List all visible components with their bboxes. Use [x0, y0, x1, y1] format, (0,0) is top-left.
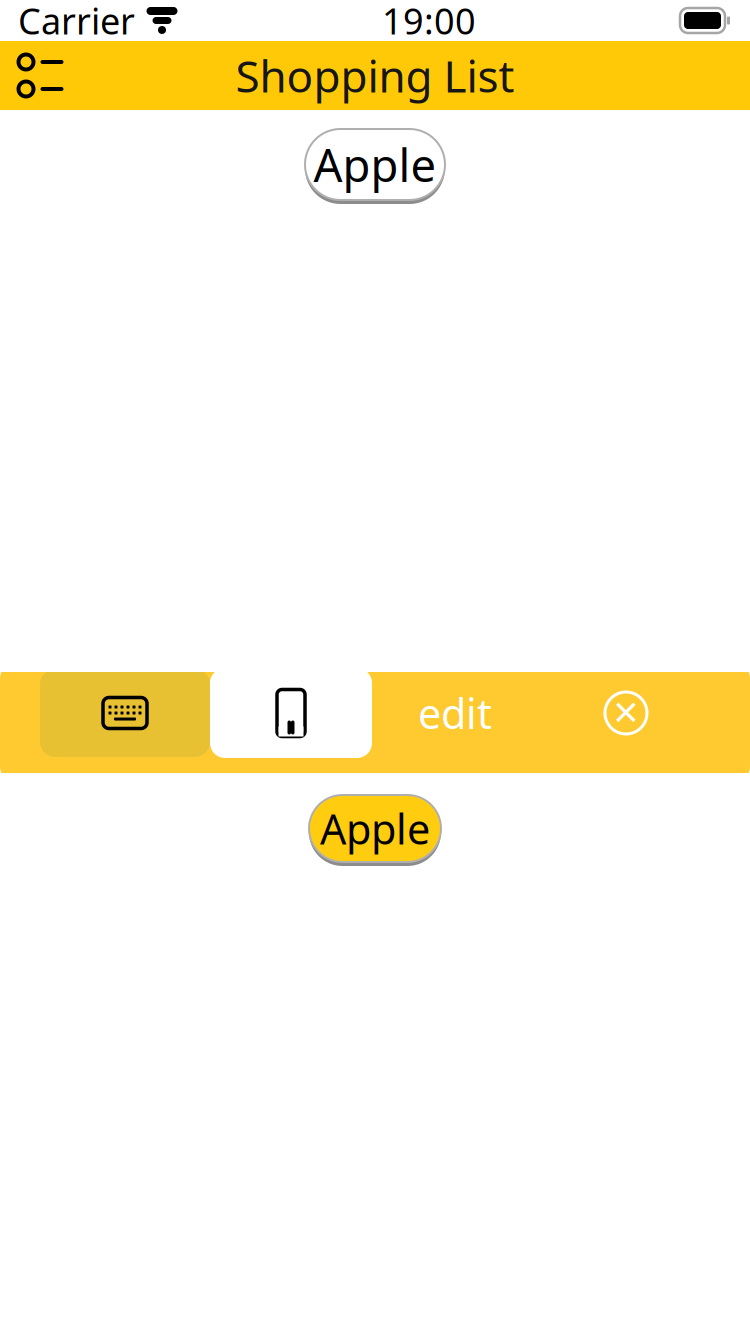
staticText: Carrier — [18, 0, 135, 44]
button[interactable]: Menu — [9, 43, 73, 107]
staticText: Apple — [313, 134, 436, 195]
staticText: 19:00 — [382, 0, 476, 44]
button[interactable]: edit — [390, 678, 520, 748]
button[interactable]: Bookmark — [210, 668, 372, 758]
staticText: ✕ — [612, 694, 640, 732]
staticText: edit — [418, 686, 492, 740]
button[interactable]: Apple — [301, 124, 449, 205]
staticText: Apple — [320, 801, 430, 856]
button[interactable]: Apple — [305, 790, 445, 867]
button[interactable]: Close — [594, 681, 658, 745]
staticText: Shopping List — [235, 46, 514, 105]
button[interactable]: Keyboard — [40, 669, 210, 757]
